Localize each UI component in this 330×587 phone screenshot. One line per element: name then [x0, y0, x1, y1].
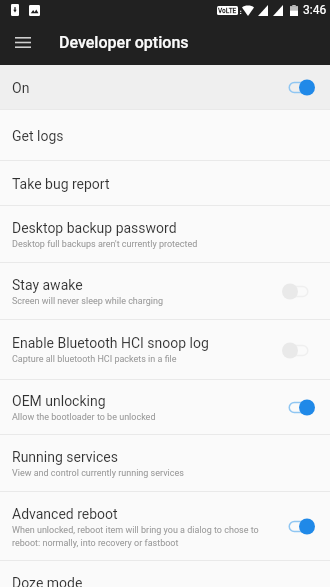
staticText: Desktop full backups aren't currently pr…: [12, 239, 198, 250]
staticText: Allow the bootloader to be unlocked: [12, 412, 156, 423]
staticText: Screen will never sleep while charging: [12, 296, 163, 307]
staticText: Desktop backup password: [12, 220, 177, 236]
button[interactable]: Turn on: [282, 342, 315, 359]
staticText: On: [12, 80, 30, 96]
staticText: Get logs: [12, 128, 64, 144]
staticText: Running services: [12, 449, 118, 465]
button[interactable]: Advanced reboot: [0, 492, 330, 561]
button[interactable]: Turn off: [282, 399, 315, 416]
staticText: Take bug report: [12, 176, 110, 192]
staticText: Developer options: [59, 33, 189, 52]
staticText: 3:46: [303, 3, 327, 17]
button[interactable]: Stay awake: [0, 263, 330, 320]
button[interactable]: OEM unlocking: [0, 380, 330, 435]
button[interactable]: Get logs: [0, 110, 330, 161]
staticText: Enable Bluetooth HCI snoop log: [12, 335, 209, 351]
staticText: Capture all bluetooth HCI packets in a f…: [12, 354, 177, 365]
staticText: View and control currently running servi…: [12, 468, 184, 479]
button[interactable]: Desktop backup password: [0, 206, 330, 263]
staticText: Advanced reboot: [12, 506, 118, 522]
button[interactable]: Turn off: [282, 518, 315, 535]
staticText: VoLTE: [218, 7, 237, 15]
staticText: Doze mode: [12, 575, 83, 587]
button[interactable]: Enable Bluetooth HCI snoop log: [0, 320, 330, 380]
staticText: OEM unlocking: [12, 393, 106, 409]
staticText: Stay awake: [12, 277, 83, 293]
button[interactable]: Running services: [0, 435, 330, 492]
button[interactable]: Doze mode: [0, 561, 330, 587]
staticText: When unlocked, reboot item will bring yo…: [12, 525, 272, 548]
button[interactable]: Take bug report: [0, 161, 330, 206]
button[interactable]: On: [0, 65, 330, 110]
button[interactable]: Open navigation drawer: [0, 20, 45, 65]
button[interactable]: Turn off: [282, 79, 315, 96]
button[interactable]: Turn on: [282, 283, 315, 300]
